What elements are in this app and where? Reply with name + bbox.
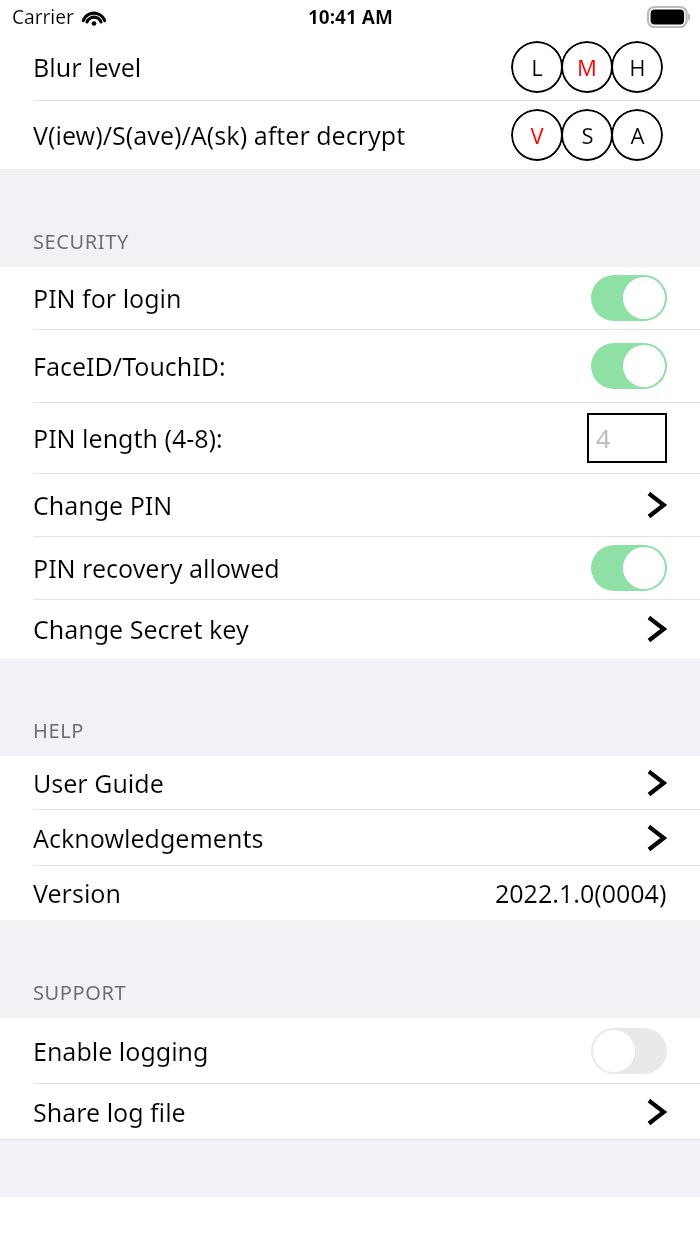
other: Change Secret key — [647, 614, 667, 644]
staticText: User Guide — [33, 766, 164, 800]
staticText: S — [581, 120, 594, 150]
staticText: Carrier — [12, 4, 74, 30]
button[interactable]: Change Secret key — [0, 600, 700, 658]
staticText: 10:41 AM — [308, 4, 393, 30]
other: Share log file — [647, 1097, 667, 1127]
other: Change PIN — [647, 490, 667, 520]
staticText: H — [629, 52, 646, 82]
staticText: PIN for login — [33, 281, 182, 315]
staticText: SECURITY — [33, 228, 129, 255]
button[interactable]: PIN recovery allowed — [0, 537, 700, 599]
staticText: Change PIN — [33, 488, 173, 522]
button[interactable]: 4 — [587, 413, 667, 463]
staticText: SUPPORT — [33, 979, 127, 1006]
staticText: L — [531, 52, 543, 82]
other: User Guide — [647, 768, 667, 798]
staticText: FaceID/TouchID: — [33, 349, 226, 383]
staticText: Blur level — [33, 50, 142, 84]
staticText: Enable logging — [33, 1034, 209, 1068]
button[interactable]: V(iew)/S(ave)/A(sk) after decrypt — [0, 101, 700, 169]
button[interactable]: Blur level — [0, 34, 700, 100]
button[interactable]: H — [611, 41, 663, 93]
button[interactable]: Acknowledgements — [0, 810, 700, 865]
button[interactable]: FaceID/TouchID: — [0, 330, 700, 402]
button[interactable]: PIN for login — [0, 267, 700, 329]
staticText: PIN recovery allowed — [33, 551, 280, 585]
button[interactable]: A — [611, 109, 663, 161]
staticText: Change Secret key — [33, 612, 249, 646]
staticText: 2022.1.0(0004) — [495, 876, 667, 910]
staticText: V — [530, 120, 544, 150]
button[interactable]: M — [561, 41, 613, 93]
other: Acknowledgements — [647, 823, 667, 853]
button[interactable]: V — [511, 109, 563, 161]
button[interactable]: PIN length (4-8): — [0, 403, 700, 473]
button[interactable]: Share log file — [0, 1084, 700, 1139]
staticText: A — [630, 120, 645, 150]
button[interactable]: Version — [0, 866, 700, 920]
staticText: PIN length (4-8): — [33, 421, 223, 455]
staticText: Version — [33, 876, 121, 910]
button[interactable]: L — [511, 41, 563, 93]
staticText: Acknowledgements — [33, 821, 264, 855]
button[interactable]: User Guide — [0, 756, 700, 809]
staticText: HELP — [33, 717, 84, 744]
button[interactable]: Enable logging — [0, 1018, 700, 1083]
staticText: M — [577, 52, 597, 82]
staticText: 4 — [596, 421, 611, 455]
button[interactable]: Change PIN — [0, 474, 700, 536]
staticText: Share log file — [33, 1095, 186, 1129]
button[interactable]: S — [561, 109, 613, 161]
staticText: V(iew)/S(ave)/A(sk) after decrypt — [33, 118, 406, 152]
